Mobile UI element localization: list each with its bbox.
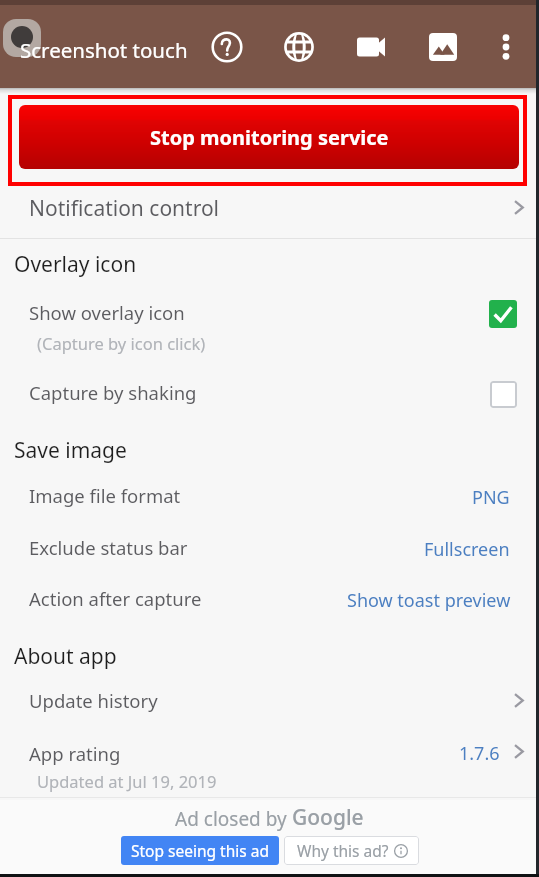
staticText: Show toast preview [347, 588, 511, 613]
button[interactable] [0, 728, 539, 794]
staticText: 1.7.6 [459, 741, 500, 766]
staticText: (Capture by icon click) [37, 332, 206, 354]
button[interactable]: Language [278, 26, 320, 68]
staticText: Image file format [29, 483, 181, 508]
staticText: Fullscreen [424, 537, 510, 562]
button[interactable]: Why this ad? [284, 836, 419, 865]
staticText: Ad closed by [175, 806, 292, 832]
staticText: Save image [14, 436, 127, 465]
staticText: Overlay icon [14, 250, 137, 279]
button[interactable]: Record video [350, 26, 392, 68]
staticText: Why this ad? [297, 840, 389, 861]
button[interactable]: Stop seeing this ad [121, 836, 279, 865]
staticText: Stop monitoring service [150, 124, 389, 151]
staticText: Exclude status bar [29, 535, 188, 560]
staticText: Google [292, 803, 364, 832]
button[interactable] [0, 470, 539, 522]
staticText: Stop seeing this ad [131, 840, 269, 861]
staticText: Show overlay icon [29, 300, 185, 325]
button[interactable]: Help [206, 26, 248, 68]
staticText: PNG [472, 485, 510, 510]
staticText: Update history [29, 688, 158, 713]
staticText: Action after capture [29, 586, 202, 611]
button[interactable] [0, 362, 539, 414]
button[interactable]: Gallery [422, 26, 464, 68]
button[interactable]: More options [485, 26, 527, 68]
button[interactable]: Show overlay icon, enabled [489, 300, 517, 328]
button[interactable] [0, 676, 539, 728]
button[interactable] [0, 280, 539, 356]
button[interactable] [0, 574, 539, 626]
button[interactable]: Capture by shaking, disabled [490, 381, 517, 408]
staticText: Updated at Jul 19, 2019 [37, 770, 217, 792]
staticText: App rating [29, 741, 121, 766]
button[interactable] [0, 186, 539, 238]
staticText: Notification control [29, 194, 220, 223]
staticText: Capture by shaking [29, 380, 197, 405]
button[interactable]: Stop monitoring service [19, 105, 519, 169]
staticText: Screenshot touch [20, 36, 188, 64]
button[interactable] [0, 522, 539, 574]
staticText: About app [14, 642, 117, 671]
